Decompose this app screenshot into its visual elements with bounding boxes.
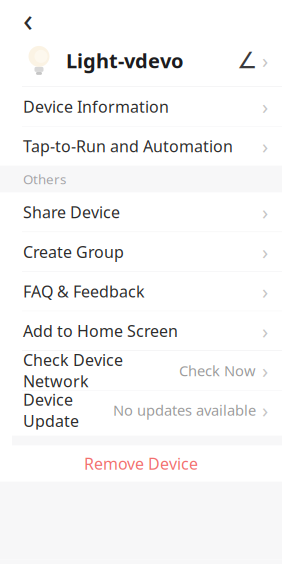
staticText: › [262,47,268,74]
button[interactable]: Device Update [0,391,282,430]
staticText: No updates available [113,400,256,420]
button[interactable]: Create Group [0,232,282,271]
staticText: › [262,93,268,120]
staticText: Check Device Network [23,349,123,392]
staticText: ∠ [237,47,257,73]
staticText: Remove Device [84,453,198,474]
staticText: Share Device [23,201,120,223]
button[interactable]: Check Device Network [0,351,282,390]
staticText: Others [23,170,66,188]
staticText: ‹ [23,0,33,41]
staticText: Create Group [23,241,124,262]
staticText: › [262,199,268,225]
staticText: › [262,318,268,344]
staticText: Device Update [23,389,79,431]
button[interactable]: FAQ & Feedback [0,272,282,311]
staticText: FAQ & Feedback [23,281,145,302]
staticText: › [262,238,268,265]
button[interactable]: Device Information [0,87,282,126]
button[interactable]: Tap-to-Run and Automation [0,127,282,166]
staticText: Check Now [179,361,256,380]
staticText: Add to Home Screen [23,320,178,341]
staticText: Light-vdevo [66,47,184,74]
staticText: Tap-to-Run and Automation [23,135,233,157]
staticText: › [262,133,268,159]
staticText: Device Information [23,96,169,117]
button[interactable]: Remove Device [0,446,282,482]
staticText: › [262,397,268,423]
staticText: › [262,357,268,384]
button[interactable]: Share Device [0,193,282,232]
button[interactable]: Back [8,3,48,35]
button[interactable]: Light-vdevo [0,34,282,86]
button[interactable]: Add to Home Screen [0,311,282,350]
staticText: › [262,278,268,305]
